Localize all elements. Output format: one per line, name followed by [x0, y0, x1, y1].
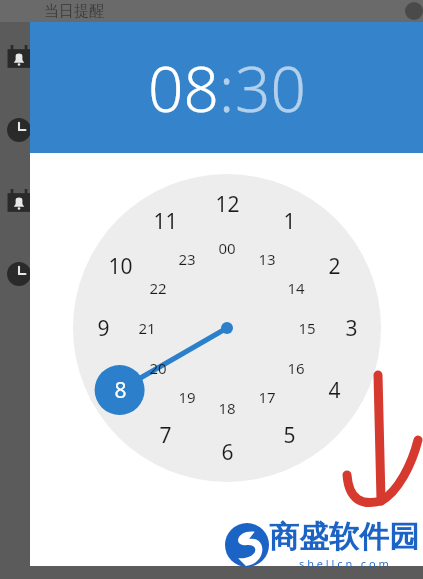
staticText: :	[219, 46, 235, 130]
staticText: 15	[298, 318, 316, 338]
staticText: 16	[287, 358, 305, 378]
button[interactable]: 20	[141, 356, 175, 380]
button[interactable]: 3	[332, 313, 370, 343]
button[interactable]: 00	[210, 236, 244, 260]
button[interactable]: 14	[279, 276, 313, 300]
button[interactable]: 9	[84, 313, 122, 343]
staticText: 4	[328, 376, 341, 405]
staticText: 21	[138, 318, 156, 338]
staticText: 19	[178, 387, 196, 407]
button[interactable]: 08	[148, 46, 219, 130]
other: Clock	[6, 117, 32, 143]
staticText: 20	[149, 358, 167, 378]
button[interactable]: 18	[210, 396, 244, 420]
button[interactable]: Reminder	[0, 166, 423, 238]
staticText: 00	[218, 238, 236, 258]
button[interactable]: 11	[146, 206, 184, 236]
button[interactable]: 4	[315, 375, 353, 405]
button[interactable]: 5	[270, 420, 308, 450]
button[interactable]: 16	[279, 356, 313, 380]
staticText: 10	[108, 252, 133, 281]
button[interactable]: 10	[101, 251, 139, 281]
staticText: 23	[178, 249, 196, 269]
staticText: 7	[159, 421, 172, 450]
staticText: 14	[287, 278, 305, 298]
staticText: 商盛软件园	[269, 518, 419, 556]
staticText: 1	[283, 207, 296, 236]
staticText: 9	[97, 314, 110, 343]
button[interactable]: 19	[170, 385, 204, 409]
staticText: 5	[283, 421, 296, 450]
button[interactable]: 7	[146, 420, 184, 450]
staticText: 12	[215, 190, 240, 219]
other: Reminder	[6, 45, 32, 71]
staticText: 6	[221, 438, 234, 467]
button[interactable]: 8	[101, 375, 139, 405]
button[interactable]: 21	[130, 316, 164, 340]
button[interactable]: 22	[141, 276, 175, 300]
button[interactable]: 30	[235, 46, 306, 130]
staticText: 13	[258, 249, 276, 269]
button[interactable]: 17	[250, 385, 284, 409]
staticText: 30	[235, 46, 306, 130]
staticText: s h e l l c n . c o m	[299, 556, 389, 571]
button[interactable]: 13	[250, 247, 284, 271]
button[interactable]: 2	[315, 251, 353, 281]
staticText: 17	[258, 387, 276, 407]
button[interactable]: Clock	[0, 94, 423, 166]
button[interactable]: Clock	[0, 238, 423, 310]
staticText: 当日提醒	[44, 2, 104, 21]
other: Reminder	[6, 189, 32, 215]
button[interactable]: 6	[208, 437, 246, 467]
staticText: 18	[218, 398, 236, 418]
button[interactable]: 1	[270, 206, 308, 236]
staticText: 2	[328, 252, 341, 281]
button[interactable]: 12	[208, 189, 246, 219]
staticText: 08	[148, 46, 219, 130]
button[interactable]: Reminder	[0, 22, 423, 94]
staticText: 3	[345, 314, 358, 343]
staticText: 8	[114, 376, 127, 405]
other: Clock	[6, 261, 32, 287]
button[interactable]: 15	[290, 316, 324, 340]
button[interactable]: 23	[170, 247, 204, 271]
staticText: 22	[149, 278, 167, 298]
staticText: 11	[153, 207, 178, 236]
